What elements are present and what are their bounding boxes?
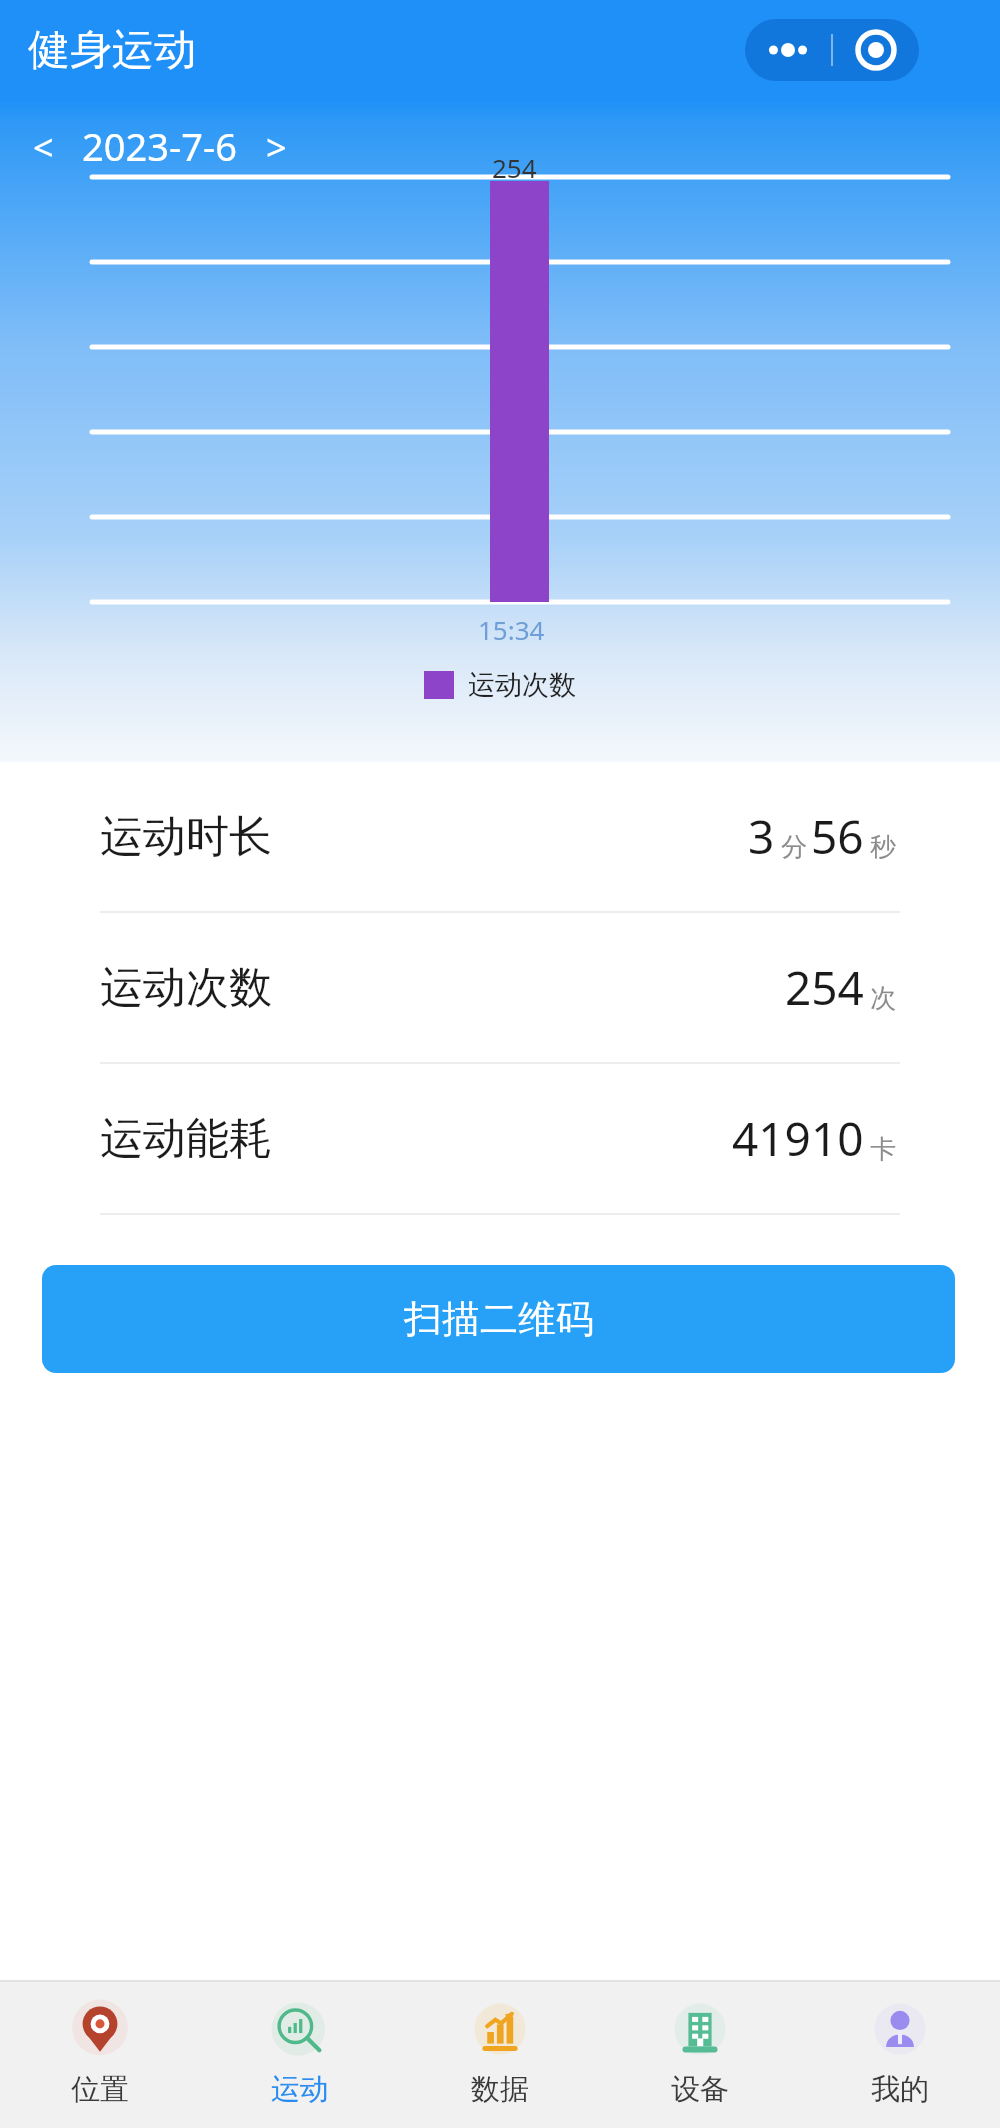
button[interactable]: 运动能耗 [100, 1064, 900, 1213]
button[interactable]: 设备 [600, 1982, 800, 2128]
button[interactable]: 运动时长 [100, 762, 900, 911]
staticText: 卡 [870, 1133, 896, 1166]
button[interactable]: 我的 [800, 1982, 1000, 2128]
button[interactable]: Previous day [20, 123, 66, 169]
staticText: 运动时长 [100, 810, 272, 864]
staticText: 254 [785, 956, 864, 1019]
staticText: 3 [748, 805, 775, 868]
staticText: 秒 [870, 831, 896, 864]
staticText: 我的 [871, 2071, 929, 2108]
staticText: 位置 [71, 2071, 129, 2108]
button[interactable]: 位置 [0, 1982, 200, 2128]
staticText: 次 [870, 982, 896, 1015]
staticText: 数据 [471, 2071, 529, 2108]
staticText: 运动能耗 [100, 1112, 272, 1166]
button[interactable]: 数据 [400, 1982, 600, 2128]
staticText: 分 [781, 831, 807, 864]
staticText: 设备 [671, 2071, 729, 2108]
staticText: 扫描二维码 [404, 1295, 594, 1343]
button[interactable]: 扫描二维码 [42, 1265, 955, 1373]
staticText: > [266, 123, 287, 169]
staticText: 2023-7-6 [82, 120, 237, 172]
staticText: 254 [492, 150, 537, 185]
button[interactable]: Close [833, 19, 919, 81]
staticText: 56 [811, 805, 864, 868]
button[interactable]: Next day [253, 123, 299, 169]
staticText: 15:34 [478, 612, 545, 647]
staticText: 运动 [271, 2071, 329, 2108]
button[interactable]: 运动次数 [100, 913, 900, 1062]
staticText: 运动次数 [100, 961, 272, 1015]
staticText: < [33, 123, 54, 169]
button[interactable]: More options [745, 19, 831, 81]
button[interactable]: 运动 [200, 1982, 400, 2128]
staticText: 41910 [732, 1107, 864, 1170]
staticText: 健身运动 [28, 24, 196, 77]
staticText: 运动次数 [468, 668, 576, 702]
